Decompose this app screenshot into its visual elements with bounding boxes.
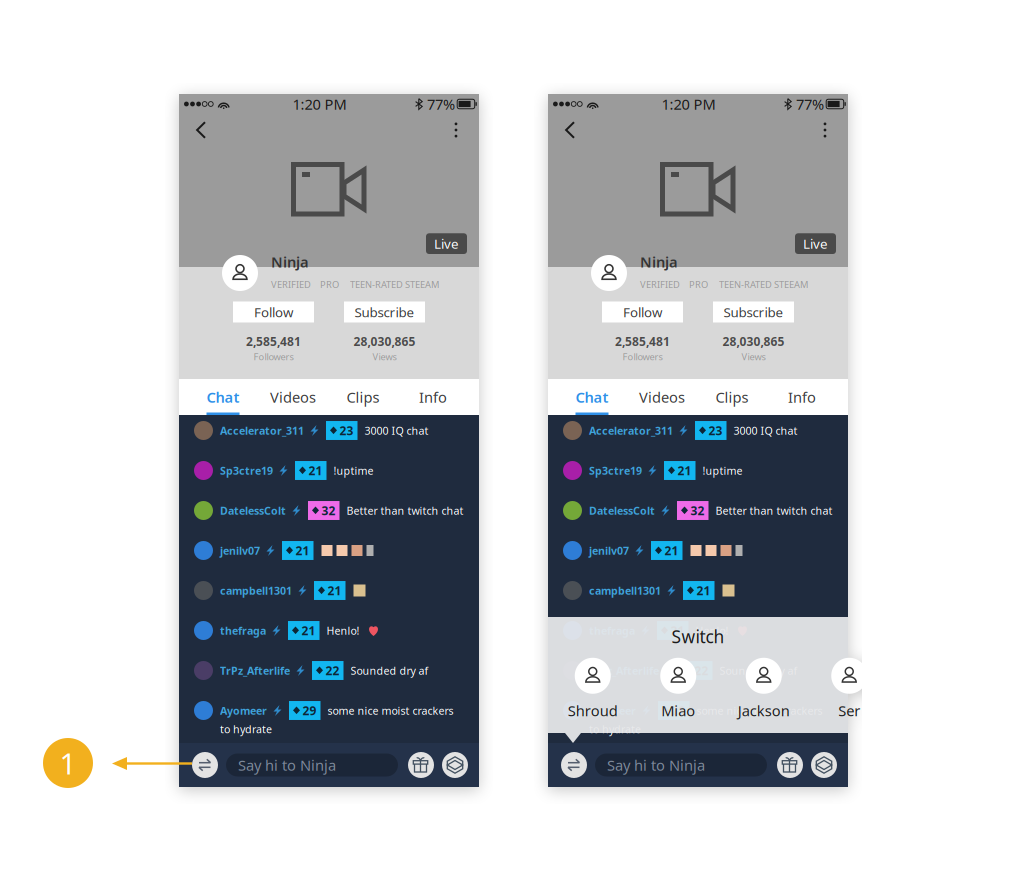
staticText: 28,030,865: [722, 333, 784, 349]
staticText: 32: [690, 502, 704, 518]
staticText: TrPz_Afterlife: [220, 663, 290, 678]
staticText: 77%: [796, 94, 824, 114]
button[interactable]: Switch channel: [192, 752, 218, 778]
staticText: Views: [372, 350, 396, 363]
button[interactable]: Clips: [697, 379, 767, 415]
button[interactable]: Info: [398, 379, 468, 415]
staticText: PRO: [320, 278, 339, 291]
staticText: Henlo!: [695, 623, 728, 638]
staticText: Say hi to Ninja: [238, 755, 336, 775]
button[interactable]: Jackson: [734, 657, 794, 721]
staticText: Sounded dry af: [350, 663, 428, 678]
staticText: 21: [301, 622, 315, 638]
staticText: Follow: [254, 303, 293, 321]
staticText: 21: [308, 462, 322, 478]
staticText: Sp3ctre19: [589, 463, 642, 478]
button[interactable]: Clips: [328, 379, 398, 415]
staticText: PRO: [689, 278, 708, 291]
staticText: 21: [677, 462, 691, 478]
button[interactable]: Back: [554, 114, 586, 146]
staticText: 3000 IQ chat: [733, 423, 797, 438]
staticText: 3000 IQ chat: [364, 423, 428, 438]
staticText: 21: [664, 542, 678, 558]
staticText: TEEN-RATED STEEAM: [719, 278, 808, 291]
button[interactable]: More options: [811, 114, 839, 146]
staticText: Chat: [206, 387, 239, 407]
staticText: Sounded dry af: [719, 663, 797, 678]
staticText: 2,585,481: [246, 333, 301, 349]
staticText: !uptime: [333, 463, 373, 478]
staticText: 28,030,865: [353, 333, 415, 349]
staticText: !uptime: [702, 463, 742, 478]
button[interactable]: Ser: [819, 657, 879, 721]
staticText: Say hi to Ninja: [607, 755, 705, 775]
button[interactable]: More options: [442, 114, 470, 146]
staticText: TrPz_Afterlife: [589, 663, 659, 678]
staticText: Info: [788, 387, 816, 407]
staticText: 22: [694, 662, 708, 678]
button[interactable]: Back: [185, 114, 217, 146]
button[interactable]: Extensions: [442, 752, 468, 778]
staticText: campbell1301: [589, 583, 661, 598]
staticText: jenilv07: [220, 543, 260, 558]
button[interactable]: Extensions: [811, 752, 837, 778]
staticText: Ninja: [271, 252, 309, 271]
staticText: VERIFIED: [640, 278, 680, 291]
button[interactable]: Shroud: [563, 657, 623, 721]
button[interactable]: Videos: [627, 379, 697, 415]
staticText: 21: [327, 582, 341, 598]
staticText: Follow: [623, 303, 662, 321]
staticText: Better than twitch chat: [346, 503, 463, 518]
staticText: Followers: [253, 350, 293, 363]
button[interactable]: Send gift: [777, 752, 803, 778]
staticText: some nice moist crackers: [696, 703, 822, 718]
button[interactable]: Follow: [233, 301, 314, 322]
button[interactable]: Send gift: [408, 752, 434, 778]
staticText: 2,585,481: [615, 333, 670, 349]
button[interactable]: Miao: [648, 657, 708, 721]
staticText: Subscribe: [354, 303, 414, 321]
staticText: Better than twitch chat: [715, 503, 832, 518]
staticText: jenilv07: [589, 543, 629, 558]
staticText: Videos: [639, 387, 685, 407]
staticText: Accelerator_311: [589, 423, 673, 438]
staticText: 1:20 PM: [293, 94, 347, 114]
button[interactable]: Subscribe: [344, 301, 425, 322]
staticText: Jackson: [738, 701, 790, 720]
button[interactable]: Say hi to Ninja: [226, 753, 398, 776]
button[interactable]: Chat: [557, 379, 627, 415]
staticText: Ayomeer: [589, 703, 636, 718]
button[interactable]: Switch channel: [561, 752, 587, 778]
button[interactable]: Follow: [602, 301, 683, 322]
staticText: 21: [670, 622, 684, 638]
staticText: Switch: [671, 625, 724, 648]
staticText: 22: [325, 662, 339, 678]
staticText: Sp3ctre19: [220, 463, 273, 478]
staticText: 23: [708, 422, 722, 438]
staticText: to hydrate: [220, 722, 272, 736]
button[interactable]: Chat: [188, 379, 258, 415]
staticText: Live: [803, 235, 828, 252]
staticText: Views: [741, 350, 765, 363]
staticText: DatelessColt: [589, 503, 655, 518]
staticText: Accelerator_311: [220, 423, 304, 438]
staticText: Shroud: [568, 701, 618, 720]
staticText: Chat: [575, 387, 608, 407]
staticText: Clips: [715, 387, 748, 407]
button[interactable]: Info: [767, 379, 837, 415]
staticText: Henlo!: [326, 623, 359, 638]
staticText: 77%: [427, 94, 455, 114]
staticText: some nice moist crackers: [327, 703, 453, 718]
staticText: Miao: [661, 701, 695, 720]
staticText: Videos: [270, 387, 316, 407]
button[interactable]: Videos: [258, 379, 328, 415]
staticText: Ayomeer: [220, 703, 267, 718]
staticText: 21: [295, 542, 309, 558]
button[interactable]: Say hi to Ninja: [595, 753, 767, 776]
staticText: 1:20 PM: [662, 94, 716, 114]
staticText: Ninja: [640, 252, 678, 271]
button[interactable]: Subscribe: [713, 301, 794, 322]
staticText: VERIFIED: [271, 278, 311, 291]
staticText: campbell1301: [220, 583, 292, 598]
staticText: thefraga: [589, 623, 635, 638]
